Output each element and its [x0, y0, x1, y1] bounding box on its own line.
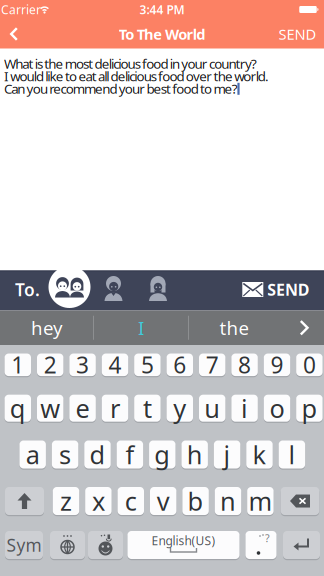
button[interactable]: g — [149, 440, 175, 468]
button[interactable]: o — [264, 395, 290, 422]
staticText: 8 — [238, 350, 251, 380]
staticText: 1 — [11, 350, 24, 380]
button[interactable]: Return — [283, 531, 320, 559]
staticText: 9 — [270, 350, 283, 380]
button[interactable]: Shift — [5, 487, 44, 515]
button[interactable]: r — [102, 395, 128, 422]
staticText: t — [143, 391, 152, 425]
button[interactable]: Back — [10, 27, 18, 41]
staticText: 3:44 PM — [139, 1, 184, 17]
staticText: a — [26, 438, 40, 471]
button[interactable]: d — [84, 440, 111, 468]
button[interactable]: 1 — [5, 354, 31, 376]
button[interactable]: 5 — [134, 354, 161, 376]
button[interactable]: More suggestions — [300, 320, 309, 335]
staticText: 3 — [76, 350, 89, 380]
staticText: u — [204, 391, 220, 425]
button[interactable]: l — [279, 440, 305, 468]
button[interactable]: Send to boy — [101, 275, 125, 301]
button[interactable]: z — [53, 487, 79, 515]
button[interactable]: h — [181, 440, 208, 468]
button[interactable]: s — [52, 440, 78, 468]
staticText: hey — [31, 315, 63, 340]
staticText: 2 — [44, 350, 57, 380]
button[interactable]: c — [118, 487, 144, 515]
staticText: i — [241, 391, 248, 425]
button[interactable]: a — [19, 440, 46, 468]
staticText: y — [173, 391, 186, 425]
staticText: r — [110, 391, 120, 425]
button[interactable]: hey — [2, 311, 92, 345]
button[interactable]: 4 — [102, 354, 128, 376]
button[interactable]: Sym — [5, 531, 43, 559]
button[interactable]: 0 — [296, 354, 323, 376]
button[interactable]: e — [69, 395, 96, 422]
staticText: s — [59, 438, 71, 471]
staticText: 5 — [141, 350, 154, 380]
button[interactable]: 2 — [37, 354, 63, 376]
button[interactable]: SEND — [234, 274, 318, 304]
staticText: To The World — [119, 24, 205, 44]
staticText: c — [125, 484, 137, 518]
button[interactable]: p — [296, 395, 323, 422]
button[interactable]: m — [247, 487, 274, 515]
staticText: z — [60, 484, 72, 518]
staticText: Sym — [6, 533, 41, 556]
button[interactable]: y — [167, 395, 193, 422]
button[interactable]: Send to everyone — [48, 266, 90, 308]
staticText: Carrier — [1, 1, 41, 17]
button[interactable]: f — [117, 440, 143, 468]
button[interactable]: v — [150, 487, 176, 515]
staticText: I — [138, 315, 144, 340]
button[interactable]: b — [182, 487, 209, 515]
staticText: 4 — [108, 350, 121, 380]
staticText: SEND — [267, 279, 310, 300]
staticText: 7 — [206, 350, 219, 380]
button[interactable]: w — [37, 395, 63, 422]
button[interactable]: i — [231, 395, 258, 422]
staticText: k — [252, 438, 266, 471]
staticText: f — [125, 438, 134, 471]
button[interactable]: k — [246, 440, 273, 468]
button[interactable]: n — [215, 487, 241, 515]
staticText: g — [154, 438, 170, 471]
button[interactable]: the — [189, 311, 279, 345]
staticText: h — [187, 438, 203, 471]
button[interactable]: Switch language — [50, 531, 85, 559]
staticText: SEND — [278, 24, 316, 44]
button[interactable]: SEND — [273, 20, 321, 48]
button[interactable]: 9 — [264, 354, 290, 376]
button[interactable]: t — [134, 395, 161, 422]
staticText: the — [219, 315, 249, 340]
staticText: I would like to eat all delicious food o… — [4, 67, 269, 85]
staticText: 6 — [173, 350, 186, 380]
staticText: w — [40, 391, 60, 425]
button[interactable]: I — [95, 311, 187, 345]
button[interactable]: 8 — [231, 354, 258, 376]
button[interactable]: Space — [127, 531, 239, 559]
staticText: l — [288, 438, 295, 471]
button[interactable]: q — [5, 395, 31, 422]
button[interactable]: u — [199, 395, 225, 422]
staticText: x — [92, 484, 105, 518]
button[interactable]: x — [85, 487, 112, 515]
staticText: v — [157, 484, 170, 518]
button[interactable]: Send to girl — [146, 275, 170, 301]
staticText: d — [89, 438, 105, 471]
button[interactable]: 3 — [69, 354, 96, 376]
button[interactable]: Emoji — [88, 531, 123, 559]
staticText: 0 — [303, 350, 316, 380]
staticText: j — [224, 438, 231, 471]
staticText: o — [269, 391, 284, 425]
staticText: What is the most delicious food in your … — [4, 55, 257, 72]
staticText: ? — [265, 531, 270, 545]
staticText: p — [301, 391, 317, 425]
staticText: b — [188, 484, 204, 518]
staticText: English(US) — [151, 532, 215, 548]
button[interactable]: 7 — [199, 354, 225, 376]
button[interactable]: j — [214, 440, 240, 468]
button[interactable]: 6 — [167, 354, 193, 376]
button[interactable]: Delete — [281, 487, 319, 515]
button[interactable]: Period — [245, 531, 276, 559]
staticText: e — [76, 391, 90, 425]
